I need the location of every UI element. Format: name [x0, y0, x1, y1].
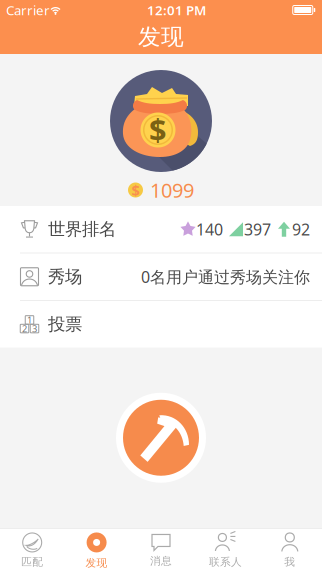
button[interactable]: 联系人	[193, 529, 258, 572]
staticText: 1	[27, 314, 32, 326]
staticText: 投票	[48, 314, 82, 335]
button[interactable]: 1	[0, 301, 322, 347]
staticText: 联系人	[209, 555, 242, 568]
staticText: 秀场	[48, 266, 82, 287]
staticText: $	[131, 180, 139, 200]
staticText: 我	[284, 555, 295, 568]
button[interactable]: 发现	[64, 529, 129, 572]
staticText: 397	[244, 219, 271, 240]
staticText: 1099	[150, 177, 194, 203]
staticText: 发现	[86, 556, 108, 569]
staticText: Carrier	[6, 1, 50, 19]
staticText: 3	[32, 322, 37, 335]
button[interactable]: 世界排名	[0, 206, 322, 252]
button[interactable]: 我	[258, 529, 322, 572]
staticText: 12:01 PM	[147, 1, 206, 19]
button[interactable]: Mine	[123, 400, 199, 476]
staticText: 世界排名	[48, 219, 116, 240]
button[interactable]: 匹配	[0, 529, 64, 572]
staticText: 匹配	[21, 555, 43, 568]
button[interactable]: 秀场	[0, 253, 322, 300]
button[interactable]: 消息	[129, 529, 193, 572]
staticText: 140	[196, 219, 223, 240]
staticText: 消息	[150, 554, 172, 567]
staticText: 0名用户通过秀场关注你	[141, 266, 310, 287]
staticText: 发现	[138, 23, 184, 51]
staticText: 92	[292, 219, 310, 240]
staticText: $	[149, 109, 167, 149]
staticText: 2	[22, 322, 27, 335]
